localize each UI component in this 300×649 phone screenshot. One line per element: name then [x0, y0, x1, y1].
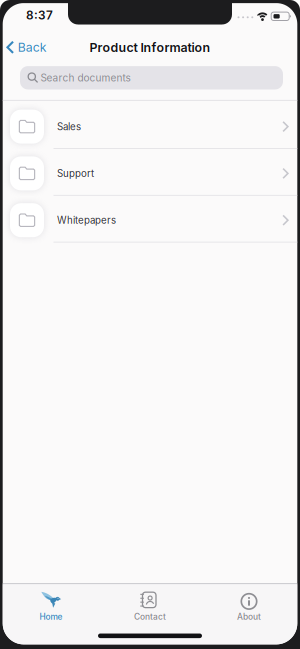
staticText: Product Information	[89, 40, 210, 55]
staticText: Search documents	[40, 72, 130, 84]
staticText: Support	[57, 167, 94, 179]
button[interactable]: Search documents	[20, 66, 283, 89]
button[interactable]: Whitepapers	[3, 197, 297, 244]
staticText: Sales	[57, 121, 81, 132]
button[interactable]: About	[204, 585, 294, 627]
button[interactable]: Home	[6, 585, 96, 627]
button[interactable]: Back	[6, 36, 47, 58]
staticText: Home	[39, 611, 62, 622]
staticText: Contact	[134, 611, 166, 622]
staticText: Whitepapers	[57, 214, 116, 226]
button[interactable]: Support	[3, 150, 297, 197]
staticText: Back	[18, 40, 47, 55]
staticText: About	[237, 611, 261, 622]
button[interactable]: Sales	[3, 103, 297, 150]
button[interactable]: Contact	[105, 585, 195, 627]
staticText: 8:37	[26, 8, 53, 22]
